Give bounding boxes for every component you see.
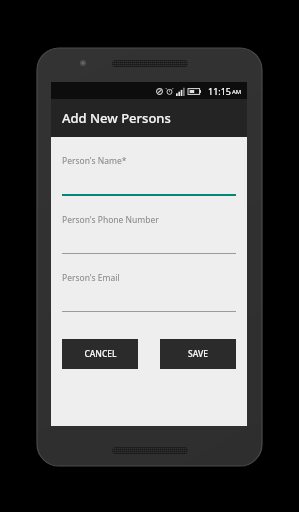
button[interactable]: Person's Email [62, 272, 236, 312]
staticText: AM [232, 88, 242, 96]
staticText: Add New Persons [62, 109, 171, 127]
staticText: Person's Name* [62, 155, 127, 167]
button[interactable]: CANCEL [62, 339, 138, 369]
staticText: 11:15 [208, 85, 232, 97]
staticText: SAVE [188, 348, 208, 360]
button[interactable]: SAVE [160, 339, 236, 369]
button[interactable]: Person's Phone Number [62, 214, 236, 254]
staticText: Person's Phone Number [62, 214, 159, 226]
staticText: CANCEL [84, 348, 117, 360]
button[interactable]: Person's Name* [62, 155, 236, 196]
staticText: Person's Email [62, 272, 120, 284]
